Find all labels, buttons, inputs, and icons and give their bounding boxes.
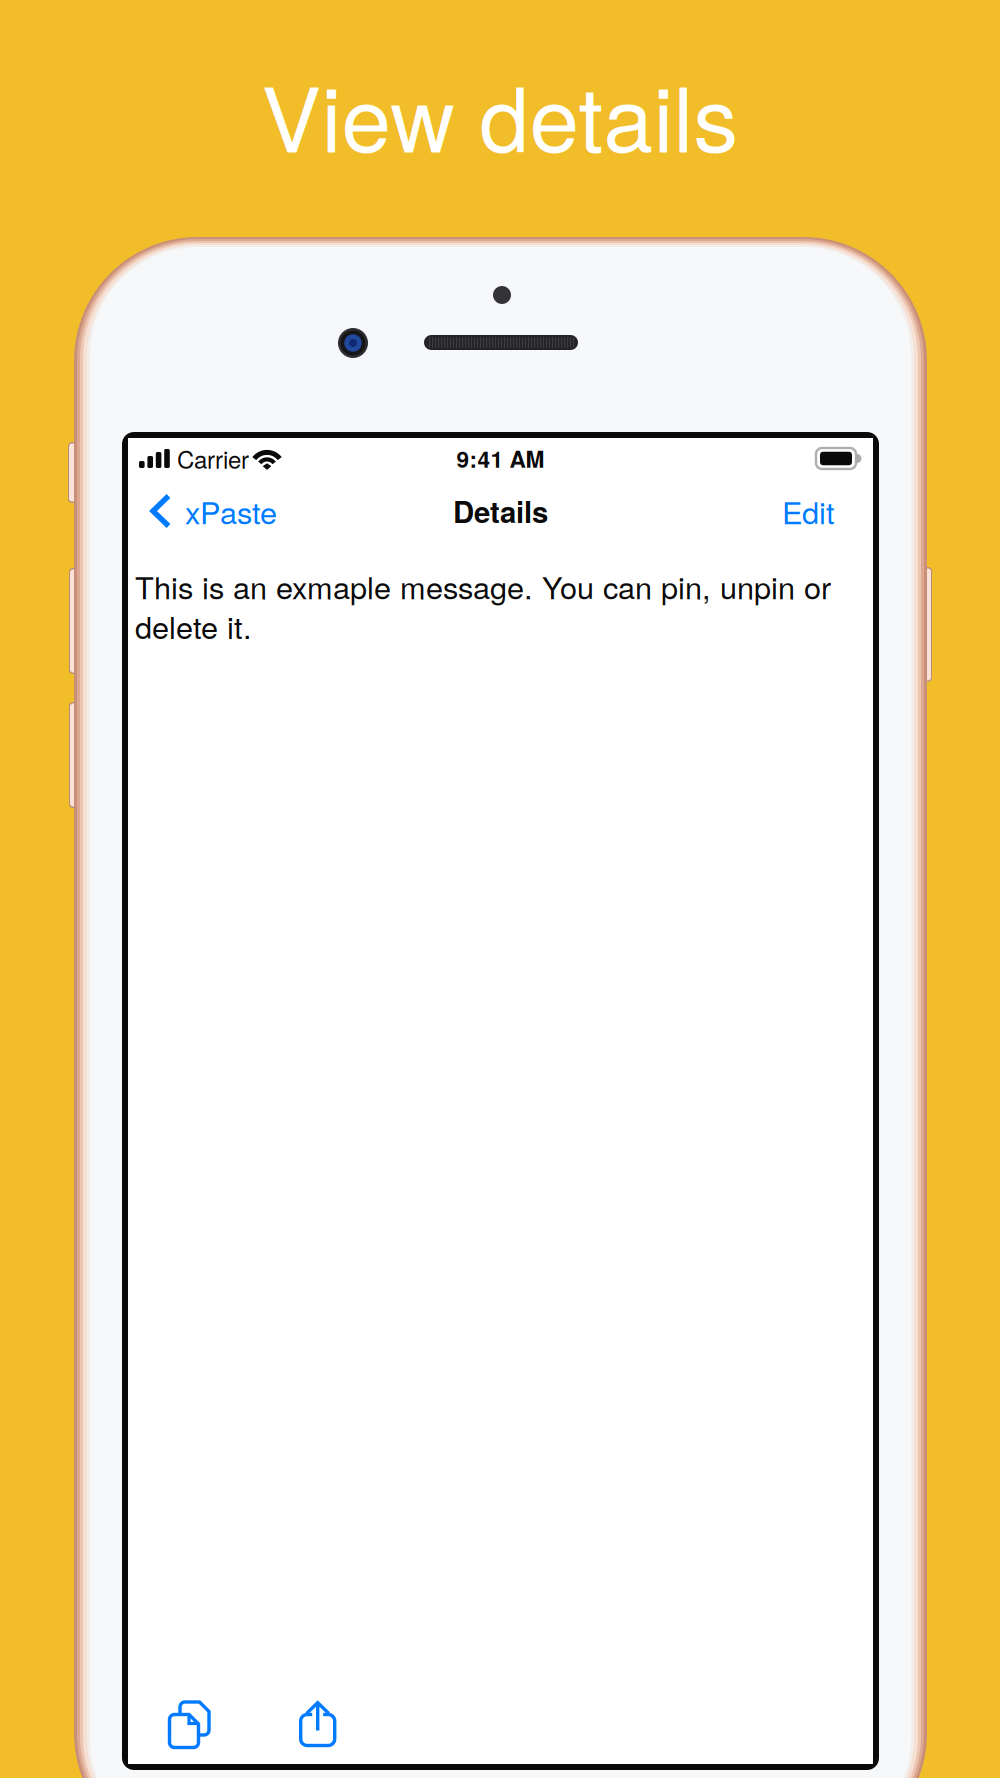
staticText: This is an exmaple message. You can pin,… <box>135 564 831 648</box>
staticText: Details <box>453 490 548 532</box>
staticText: xPaste <box>185 489 277 533</box>
staticText: Edit <box>782 489 835 533</box>
button[interactable]: xPaste <box>128 480 291 542</box>
button[interactable]: Share <box>283 1688 381 1761</box>
staticText: 9:41 AM <box>456 442 544 475</box>
staticText: View details <box>261 50 738 178</box>
staticText: Carrier <box>177 441 249 476</box>
button[interactable]: Copy <box>128 1688 283 1761</box>
button[interactable]: Edit <box>764 480 873 542</box>
